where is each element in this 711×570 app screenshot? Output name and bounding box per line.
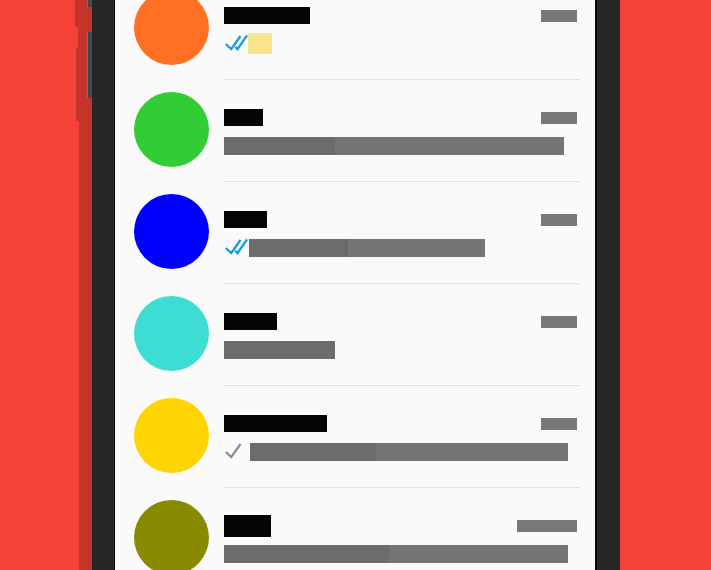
button[interactable] bbox=[116, 487, 594, 570]
button[interactable] bbox=[116, 79, 594, 181]
button[interactable]: Contact avatar bbox=[134, 0, 209, 65]
button[interactable] bbox=[116, 181, 594, 283]
button[interactable]: Contact avatar bbox=[134, 92, 209, 167]
button[interactable]: Contact avatar bbox=[134, 194, 209, 269]
button[interactable]: Contact avatar bbox=[134, 398, 209, 473]
button[interactable] bbox=[116, 385, 594, 487]
button[interactable] bbox=[116, 283, 594, 385]
button[interactable]: Contact avatar bbox=[134, 500, 209, 570]
button[interactable]: Contact avatar bbox=[134, 296, 209, 371]
button[interactable] bbox=[116, 0, 594, 79]
